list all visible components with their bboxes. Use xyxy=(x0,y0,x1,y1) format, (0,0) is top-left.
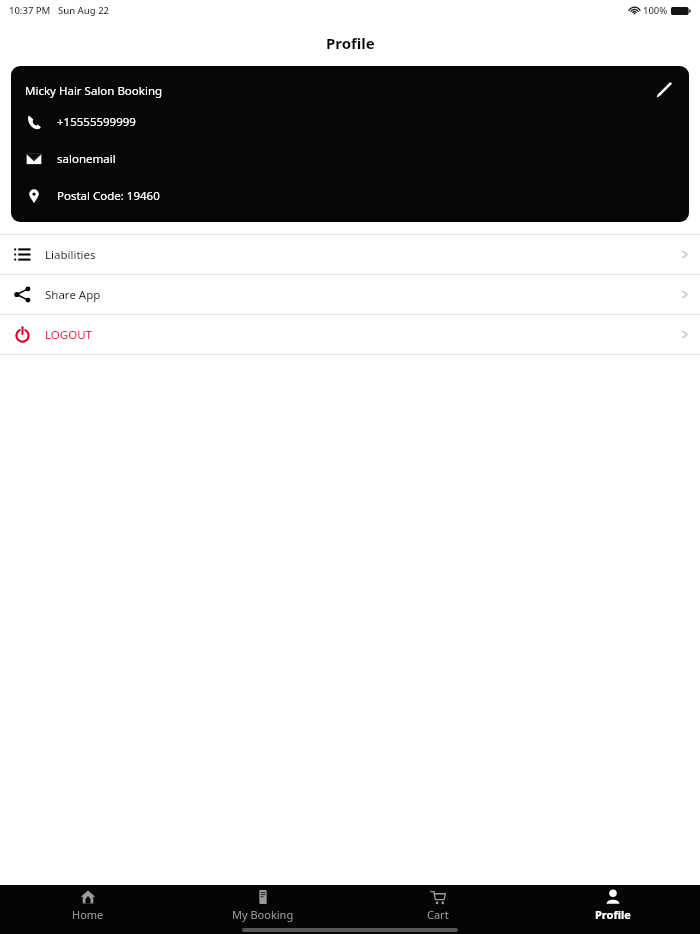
staticText: Sun Aug 22 xyxy=(58,4,110,17)
staticText: 100% xyxy=(643,4,668,17)
staticText: salonemail xyxy=(57,151,116,167)
staticText: Postal Code: 19460 xyxy=(57,188,160,204)
staticText: My Booking xyxy=(232,907,294,922)
staticText: Cart xyxy=(427,907,449,922)
button[interactable]: Liabilities xyxy=(0,235,700,274)
button[interactable]: Cart xyxy=(350,885,525,925)
staticText: Micky Hair Salon Booking xyxy=(25,83,163,99)
staticText: Profile xyxy=(595,907,631,922)
staticText: +15555599999 xyxy=(57,114,136,130)
staticText: 10:37 PM xyxy=(9,4,51,17)
staticText: Share App xyxy=(45,287,101,303)
button[interactable]: My Booking xyxy=(175,885,350,925)
button[interactable]: Home xyxy=(0,885,175,925)
staticText: Home xyxy=(72,907,104,922)
staticText: Profile xyxy=(326,33,375,53)
button[interactable]: Share App xyxy=(0,275,700,314)
button[interactable]: LOGOUT xyxy=(0,315,700,354)
button[interactable]: Profile xyxy=(525,885,700,925)
staticText: LOGOUT xyxy=(45,327,92,343)
staticText: Liabilities xyxy=(45,247,96,263)
button[interactable]: Edit profile xyxy=(645,70,683,108)
